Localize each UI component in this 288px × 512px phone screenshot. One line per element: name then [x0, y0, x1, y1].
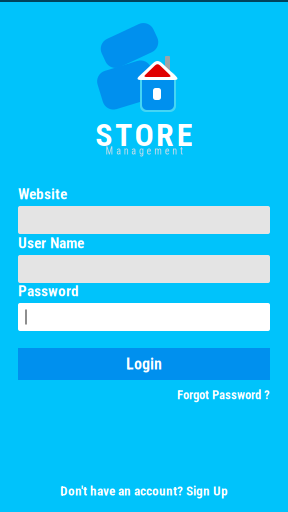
staticText: STORE: [95, 116, 193, 154]
button[interactable]: Don't have an account? Sign Up: [0, 484, 288, 498]
staticText: Forgot Password ?: [177, 388, 270, 402]
button[interactable]: Forgot Password ?: [18, 386, 270, 404]
staticText: User Name: [18, 234, 84, 252]
staticText: Website: [18, 185, 67, 203]
staticText: Management: [105, 145, 183, 157]
button[interactable]: Login: [18, 348, 270, 380]
staticText: Password: [18, 282, 79, 300]
staticText: Login: [126, 355, 162, 373]
staticText: Don't have an account? Sign Up: [60, 483, 228, 499]
